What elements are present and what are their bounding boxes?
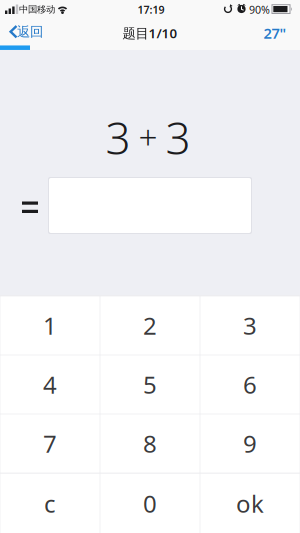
staticText: ok: [236, 488, 264, 519]
button[interactable]: 返回: [4, 16, 48, 46]
staticText: 9: [243, 428, 257, 459]
button[interactable]: 4: [0, 355, 100, 414]
staticText: 17:19: [137, 2, 164, 17]
staticText: 1: [43, 310, 57, 341]
staticText: 3: [243, 310, 257, 341]
button[interactable]: 0: [100, 474, 200, 533]
staticText: 2: [143, 310, 157, 341]
staticText: 90%: [249, 2, 270, 17]
button[interactable]: ok: [200, 474, 300, 533]
staticText: 中国移动: [19, 4, 55, 15]
button[interactable]: 5: [100, 355, 200, 414]
staticText: 7: [43, 428, 57, 459]
button[interactable]: 3: [200, 296, 300, 355]
staticText: 0: [143, 488, 157, 519]
staticText: 6: [243, 369, 257, 400]
staticText: 返回: [17, 24, 43, 40]
staticText: 3: [105, 108, 130, 167]
staticText: 8: [143, 428, 157, 459]
button[interactable]: 6: [200, 355, 300, 414]
button[interactable]: 2: [100, 296, 200, 355]
staticText: 3: [165, 108, 190, 167]
button[interactable]: 7: [0, 414, 100, 473]
button[interactable]: 8: [100, 414, 200, 473]
staticText: 27": [263, 23, 286, 43]
button[interactable]: 9: [200, 414, 300, 473]
button[interactable]: 1: [0, 296, 100, 355]
staticText: 5: [143, 369, 157, 400]
staticText: 题目1/10: [122, 24, 177, 42]
button[interactable]: c: [0, 474, 100, 533]
staticText: +: [138, 114, 157, 159]
staticText: c: [44, 488, 56, 519]
staticText: 4: [43, 369, 57, 400]
